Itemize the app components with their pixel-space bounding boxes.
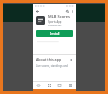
button[interactable]: Movies <box>55 82 64 89</box>
button[interactable]: More options <box>70 9 74 13</box>
button[interactable]: About this app <box>33 55 76 70</box>
button[interactable]: Search <box>65 9 69 13</box>
button[interactable]: Back <box>35 9 39 13</box>
button[interactable]: Install <box>36 30 73 37</box>
staticText: Contains ads <box>48 24 62 27</box>
button[interactable]: Games <box>34 82 43 89</box>
button[interactable]: Books <box>66 82 75 89</box>
button[interactable]: MLB Scores <box>36 14 73 27</box>
staticText: Live scores, standings and highlights <box>36 64 73 68</box>
staticText: Sports App <box>48 20 62 24</box>
staticText: About this app <box>36 57 69 62</box>
staticText: Install <box>50 32 60 36</box>
button[interactable]: Apps <box>45 82 54 89</box>
staticText: MLB Scores <box>48 14 70 19</box>
other: Open about this app <box>69 58 73 62</box>
